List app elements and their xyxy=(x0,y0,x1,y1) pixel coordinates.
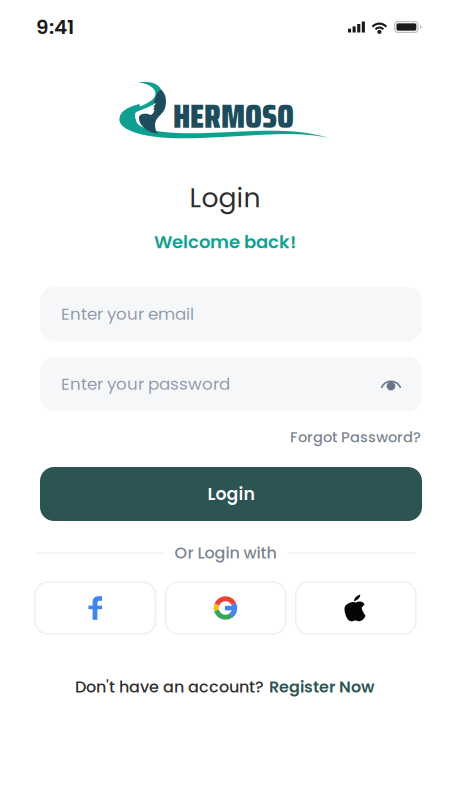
staticText: HERMOSO xyxy=(173,90,294,142)
staticText: Login xyxy=(189,179,260,217)
button[interactable]: Continue with Apple xyxy=(296,582,416,634)
staticText: Login xyxy=(207,482,254,506)
staticText: 9:41 xyxy=(36,13,74,41)
staticText: Welcome back! xyxy=(154,229,296,255)
staticText: Or Login with xyxy=(174,542,276,564)
button[interactable]: Don't have an account? xyxy=(0,676,450,698)
staticText: Enter your email xyxy=(61,302,194,326)
button[interactable]: Login xyxy=(40,467,422,521)
button[interactable]: Show password xyxy=(380,376,402,391)
staticText: Forgot Password? xyxy=(290,427,421,447)
staticText: Enter your password xyxy=(61,372,230,396)
button[interactable]: Continue with Google xyxy=(165,582,286,634)
button[interactable]: Forgot Password? xyxy=(231,427,421,447)
staticText: Don't have an account? xyxy=(75,676,264,698)
staticText: Register Now xyxy=(269,676,375,698)
button[interactable]: Continue with Facebook xyxy=(35,582,155,634)
